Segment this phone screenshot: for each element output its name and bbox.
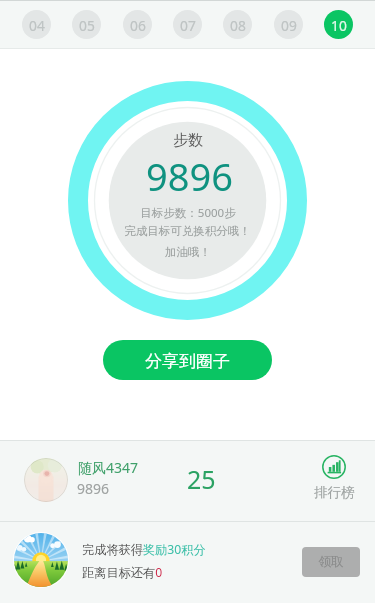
staticText: 10 bbox=[331, 16, 347, 35]
staticText: 随风4347 bbox=[78, 458, 139, 477]
staticText: 排行榜 bbox=[314, 484, 355, 501]
staticText: 07 bbox=[180, 16, 196, 35]
staticText: 目标步数：5000步 bbox=[140, 205, 236, 221]
staticText: 步数 bbox=[173, 131, 203, 150]
button[interactable]: 06 bbox=[123, 10, 152, 39]
staticText: 完成目标可兑换积分哦！ bbox=[124, 224, 251, 238]
staticText: 05 bbox=[79, 16, 95, 35]
staticText: 09 bbox=[281, 16, 297, 35]
button[interactable]: 排行榜 bbox=[310, 455, 358, 501]
button[interactable]: 09 bbox=[274, 10, 303, 39]
staticText: 加油哦！ bbox=[165, 245, 211, 259]
staticText: 完成将获得奖励30积分 bbox=[82, 541, 206, 558]
staticText: 9896 bbox=[77, 479, 110, 498]
staticText: 9896 bbox=[146, 150, 233, 202]
staticText: 25 bbox=[187, 462, 216, 496]
button[interactable]: 04 bbox=[22, 10, 51, 39]
staticText: 08 bbox=[230, 16, 246, 35]
staticText: 领取 bbox=[318, 554, 344, 570]
button[interactable]: 10 bbox=[324, 10, 353, 39]
button[interactable]: 08 bbox=[223, 10, 252, 39]
button[interactable]: 完成将获得奖励30积分 bbox=[0, 522, 375, 603]
button[interactable]: 07 bbox=[173, 10, 202, 39]
staticText: 06 bbox=[130, 16, 146, 35]
button[interactable]: 领取 bbox=[302, 547, 360, 577]
staticText: 分享到圈子 bbox=[145, 351, 230, 372]
staticText: 04 bbox=[29, 16, 45, 35]
button[interactable]: 随风4347 bbox=[0, 441, 375, 521]
staticText: 距离目标还有0 bbox=[82, 564, 163, 581]
button[interactable]: 05 bbox=[72, 10, 101, 39]
button[interactable]: 分享到圈子 bbox=[103, 340, 272, 380]
